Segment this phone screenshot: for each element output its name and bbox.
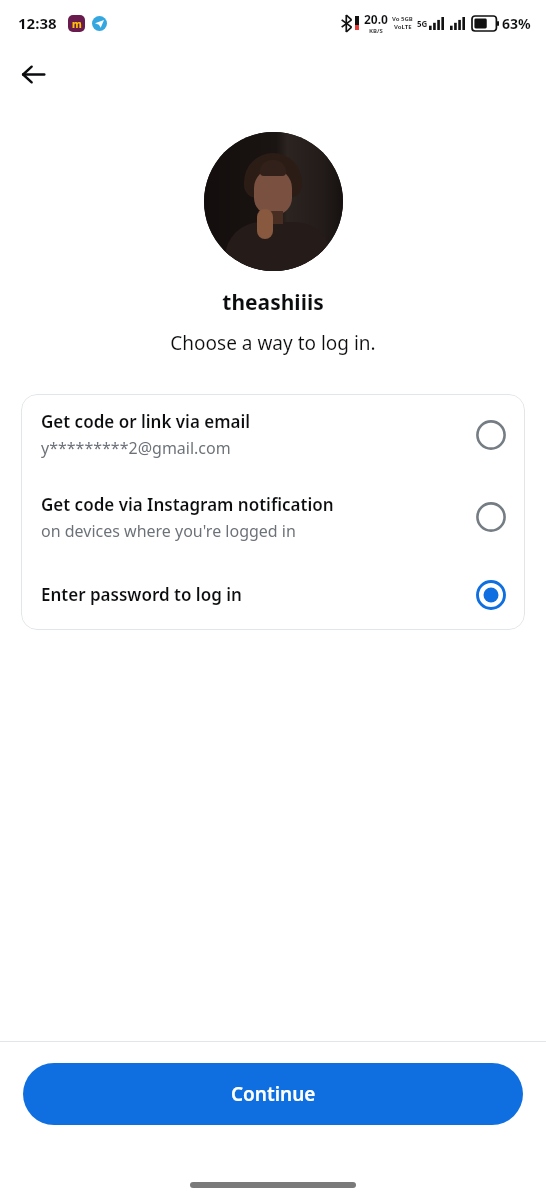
staticText: on devices where you're logged in (41, 520, 296, 542)
staticText: Vo 5GB (392, 15, 413, 23)
button[interactable]: Continue (23, 1063, 523, 1125)
button[interactable]: Get code or link via email (21, 394, 525, 475)
staticText: m (72, 17, 82, 31)
staticText: 63% (502, 14, 531, 33)
staticText: Get code via Instagram notification (41, 493, 334, 516)
staticText: 5G (417, 18, 428, 29)
button[interactable]: Enter password to log in (21, 559, 525, 630)
staticText: theashiiis (0, 288, 546, 317)
button[interactable]: Get code via Instagram notification (21, 475, 525, 559)
staticText: KB/S (369, 27, 383, 35)
staticText: Continue (231, 1081, 316, 1107)
staticText: Enter password to log in (41, 583, 242, 606)
staticText: VoLTE (394, 23, 412, 31)
staticText: Get code or link via email (41, 410, 251, 433)
staticText: 12:38 (18, 13, 57, 33)
staticText: Choose a way to log in. (0, 330, 546, 356)
staticText: 20.0 (364, 11, 388, 27)
staticText: y*********2@gmail.com (41, 437, 231, 459)
button[interactable]: Back (10, 51, 56, 97)
